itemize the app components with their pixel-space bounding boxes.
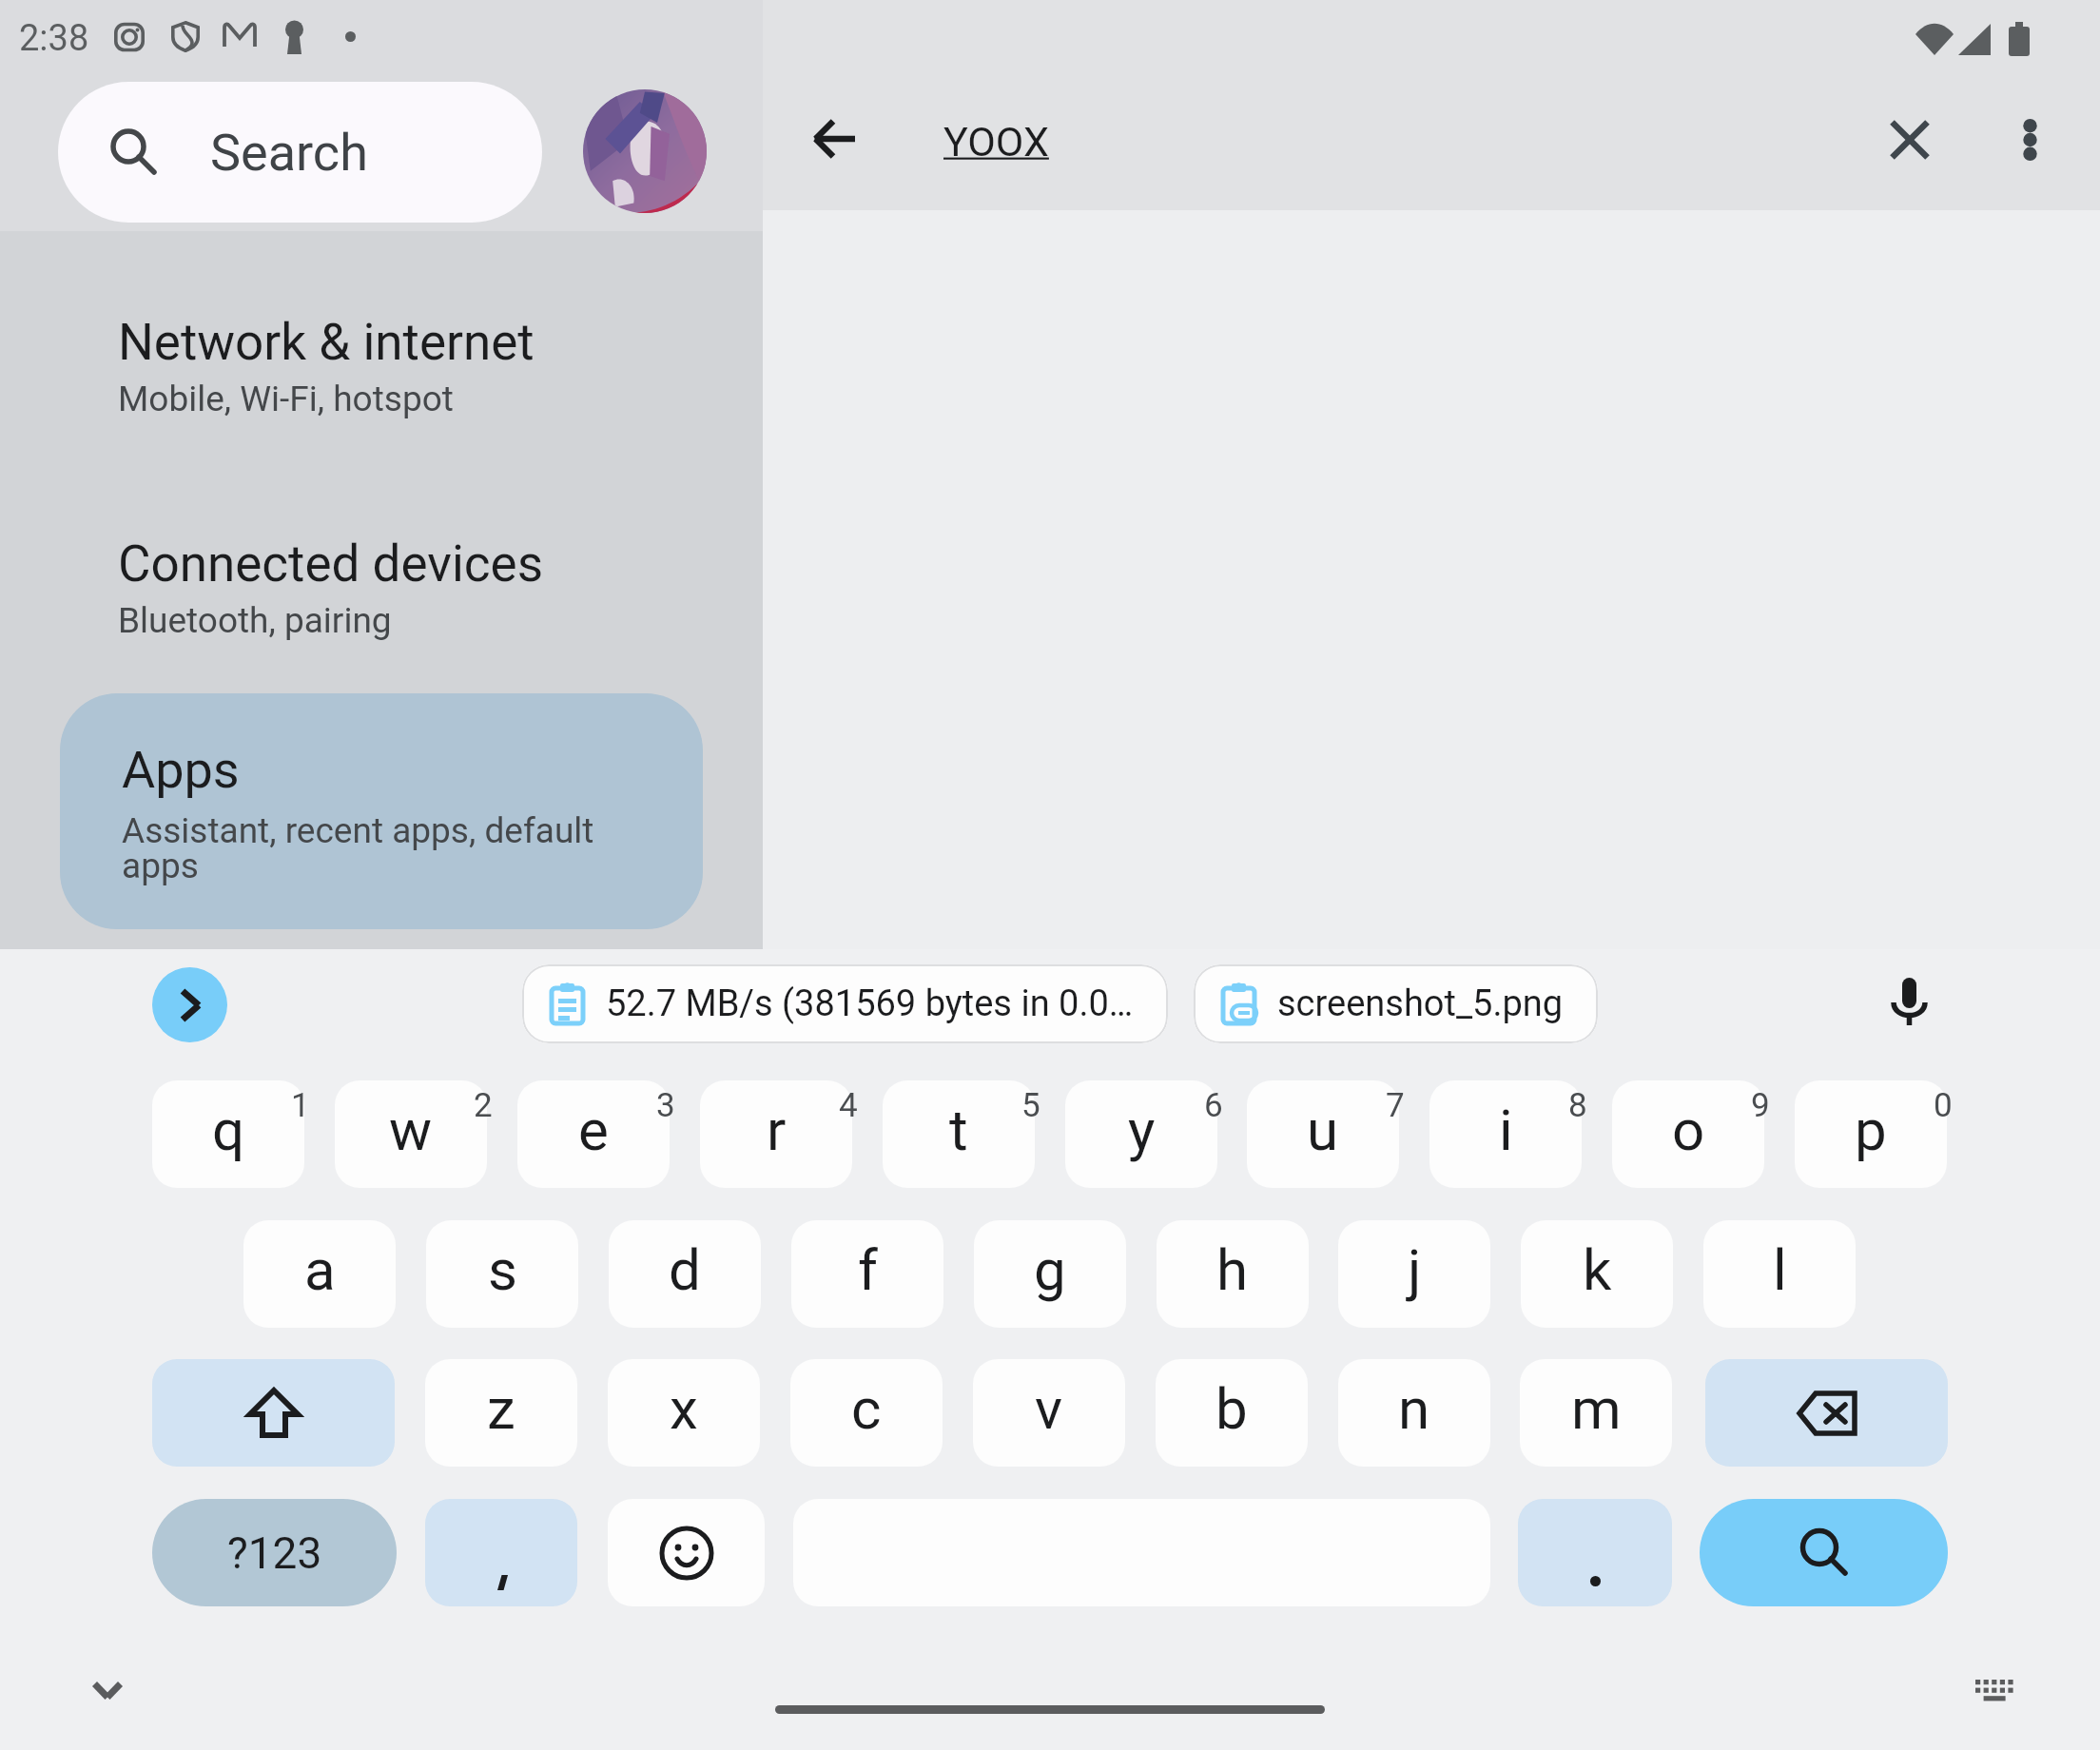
button[interactable]: Apps (60, 693, 703, 929)
button[interactable]: o (1612, 1080, 1764, 1188)
button[interactable]: YOOX (943, 118, 1049, 165)
staticText: Connected devices (118, 535, 544, 593)
staticText: Search (210, 123, 368, 183)
staticText: 8 (1568, 1086, 1587, 1125)
staticText: screenshot_5.png (1277, 982, 1564, 1025)
staticText: Bluetooth, pairing (118, 600, 392, 641)
button[interactable]: a (243, 1220, 396, 1328)
button[interactable]: Shift (152, 1359, 395, 1467)
staticText: c (851, 1375, 882, 1442)
staticText: x (670, 1375, 698, 1442)
staticText: 6 (1204, 1086, 1223, 1125)
staticText: Assistant, recent apps, default apps (122, 810, 621, 886)
staticText: b (1215, 1375, 1248, 1442)
staticText: p (1855, 1097, 1887, 1163)
staticText: k (1583, 1236, 1612, 1303)
staticText: s (488, 1236, 517, 1303)
staticText: 4 (839, 1086, 858, 1125)
staticText: u (1307, 1097, 1339, 1163)
button[interactable]: screenshot_5.png (1194, 964, 1598, 1043)
button[interactable]: Account (583, 89, 707, 213)
button[interactable]: Clear query (1867, 97, 1953, 183)
staticText: j (1408, 1236, 1422, 1303)
button[interactable]: q (152, 1080, 304, 1188)
button[interactable]: u (1247, 1080, 1399, 1188)
staticText: o (1672, 1097, 1705, 1163)
staticText: 7 (1386, 1086, 1405, 1125)
button[interactable]: Search (1700, 1499, 1948, 1606)
staticText: z (487, 1375, 515, 1442)
staticText: g (1034, 1236, 1066, 1303)
staticText: q (212, 1097, 245, 1163)
button[interactable]: f (791, 1220, 943, 1328)
staticText: Apps (122, 740, 240, 800)
staticText: 2:38 (19, 17, 89, 60)
button[interactable]: e (517, 1080, 670, 1188)
staticText: 5 (1021, 1086, 1040, 1125)
button[interactable]: Switch keyboard (1959, 1655, 2030, 1725)
staticText: l (1773, 1236, 1787, 1303)
button[interactable]: n (1338, 1359, 1490, 1467)
button[interactable]: h (1157, 1220, 1309, 1328)
staticText: d (669, 1236, 701, 1303)
button[interactable]: Connected devices (0, 514, 763, 666)
button[interactable]: m (1520, 1359, 1672, 1467)
staticText: i (1499, 1097, 1513, 1163)
staticText: 9 (1751, 1086, 1770, 1125)
button[interactable]: t (883, 1080, 1035, 1188)
button[interactable]: c (790, 1359, 943, 1467)
button[interactable]: More options (1987, 97, 2072, 183)
button[interactable]: k (1521, 1220, 1673, 1328)
button[interactable]: l (1703, 1220, 1856, 1328)
staticText: 1 (291, 1086, 310, 1125)
staticText: y (1128, 1097, 1156, 1163)
button[interactable]: w (335, 1080, 487, 1188)
staticText: Network & internet (118, 313, 535, 372)
button[interactable]: y (1065, 1080, 1217, 1188)
staticText: n (1398, 1375, 1430, 1442)
button[interactable]: Search (58, 82, 542, 223)
button[interactable]: v (973, 1359, 1125, 1467)
button[interactable]: p (1795, 1080, 1947, 1188)
staticText: v (1035, 1375, 1063, 1442)
staticText: w (389, 1097, 433, 1163)
button[interactable]: Emoji (608, 1499, 765, 1606)
staticText: 0 (1934, 1086, 1953, 1125)
button[interactable]: d (609, 1220, 761, 1328)
button[interactable]: 52.7 MB/s (381569 bytes in 0.0… (522, 964, 1168, 1043)
button[interactable]: Backspace (1705, 1359, 1948, 1467)
button[interactable]: b (1156, 1359, 1308, 1467)
staticText: m (1571, 1375, 1622, 1442)
staticText: ?123 (227, 1527, 322, 1579)
button[interactable]: s (426, 1220, 578, 1328)
button[interactable]: i (1429, 1080, 1582, 1188)
button[interactable]: g (974, 1220, 1126, 1328)
button[interactable]: Hide keyboard (76, 1659, 139, 1721)
staticText: a (304, 1236, 336, 1303)
staticText: 3 (656, 1086, 675, 1125)
staticText: 2 (474, 1086, 493, 1125)
staticText: t (949, 1097, 968, 1163)
button[interactable]: Back (791, 96, 877, 182)
staticText: h (1216, 1236, 1249, 1303)
button[interactable]: x (608, 1359, 760, 1467)
staticText: e (578, 1097, 609, 1163)
button[interactable]: Comma (425, 1499, 577, 1606)
button[interactable]: j (1338, 1220, 1490, 1328)
button[interactable]: ?123 (152, 1499, 397, 1606)
button[interactable]: r (700, 1080, 852, 1188)
button[interactable]: z (425, 1359, 577, 1467)
button[interactable]: Voice input (1866, 959, 1952, 1044)
staticText: Mobile, Wi-Fi, hotspot (118, 379, 454, 419)
staticText: r (767, 1097, 787, 1163)
staticText: 52.7 MB/s (381569 bytes in 0.0… (606, 982, 1134, 1025)
button[interactable]: Expand suggestions (152, 967, 227, 1042)
button[interactable]: Period (1518, 1499, 1672, 1606)
staticText: f (858, 1236, 878, 1303)
button[interactable]: Network & internet (0, 292, 763, 444)
